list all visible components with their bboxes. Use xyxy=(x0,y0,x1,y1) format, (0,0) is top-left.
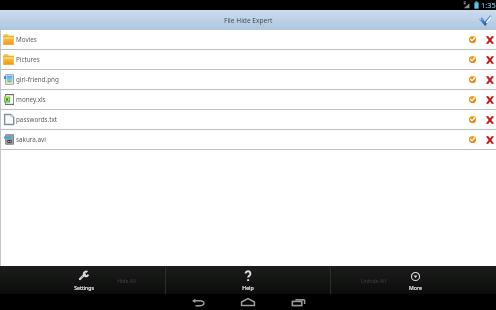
button[interactable]: Delete xyxy=(483,93,496,106)
button[interactable]: Back xyxy=(173,294,223,310)
staticText: 1:35 xyxy=(481,0,496,10)
button[interactable]: Hide xyxy=(466,113,479,126)
button[interactable]: Hide xyxy=(466,73,479,86)
button[interactable]: Hide xyxy=(466,53,479,66)
button[interactable]: Delete xyxy=(483,73,496,86)
button[interactable]: Movies xyxy=(0,30,496,50)
button[interactable]: Select all xyxy=(474,10,496,30)
staticText: passwords.txt xyxy=(16,115,58,124)
button[interactable]: Home xyxy=(223,294,273,310)
button[interactable]: Delete xyxy=(483,113,496,126)
button[interactable]: Unhide All xyxy=(352,266,394,294)
staticText: Movies xyxy=(16,35,37,44)
button[interactable]: Hide xyxy=(466,93,479,106)
button[interactable]: Help xyxy=(227,266,269,294)
staticText: Hide All xyxy=(117,277,136,284)
button[interactable]: money.xls xyxy=(0,90,496,110)
staticText: Unhide All xyxy=(361,277,386,284)
button[interactable]: Recents xyxy=(273,294,323,310)
button[interactable]: passwords.txt xyxy=(0,110,496,130)
button[interactable]: Delete xyxy=(483,33,496,46)
staticText: money.xls xyxy=(16,95,46,104)
button[interactable]: Pictures xyxy=(0,50,496,70)
staticText: Pictures xyxy=(16,55,40,64)
button[interactable]: sakura.avi xyxy=(0,130,496,150)
staticText: girl-friend.png xyxy=(16,75,59,84)
button[interactable]: Settings xyxy=(63,266,105,294)
button[interactable]: girl-friend.png xyxy=(0,70,496,90)
button[interactable]: Hide All xyxy=(105,266,147,294)
staticText: More xyxy=(409,284,422,291)
button[interactable]: Hide xyxy=(466,133,479,146)
button[interactable]: Delete xyxy=(483,133,496,146)
staticText: File Hide Expert xyxy=(224,16,273,25)
button[interactable]: Delete xyxy=(483,53,496,66)
button[interactable]: More xyxy=(394,266,436,294)
staticText: Help xyxy=(242,284,254,291)
button[interactable]: Hide xyxy=(466,33,479,46)
staticText: sakura.avi xyxy=(16,135,46,144)
staticText: Settings xyxy=(74,284,94,291)
